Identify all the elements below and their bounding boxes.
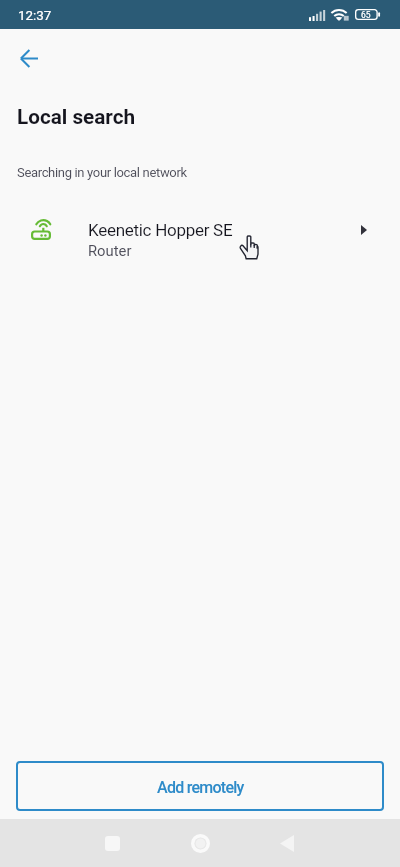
button[interactable]: Recent apps bbox=[92, 823, 132, 863]
staticText: 65 bbox=[361, 10, 371, 20]
staticText: 12:37 bbox=[18, 8, 52, 24]
staticText: Local search bbox=[17, 105, 136, 129]
button[interactable]: Back bbox=[0, 29, 58, 85]
button[interactable]: Keenetic Hopper SE bbox=[0, 210, 400, 268]
staticText: Keenetic Hopper SE bbox=[88, 220, 233, 240]
button[interactable]: Back bbox=[267, 823, 307, 863]
button[interactable]: Add remotely bbox=[16, 761, 384, 811]
staticText: Router bbox=[88, 242, 132, 259]
button[interactable]: Home bbox=[180, 823, 220, 863]
staticText: Searching in your local network bbox=[17, 165, 187, 180]
staticText: Add remotely bbox=[157, 778, 244, 797]
